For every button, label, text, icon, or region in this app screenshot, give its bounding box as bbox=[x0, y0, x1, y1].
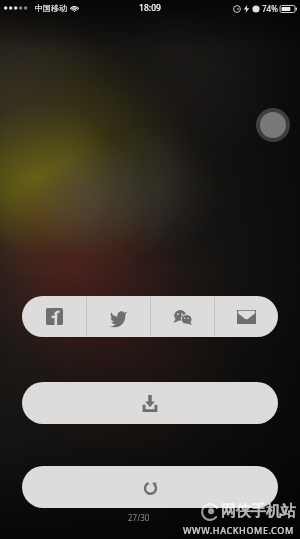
button[interactable]: Download bbox=[22, 382, 278, 424]
button[interactable]: Share on Facebook bbox=[22, 296, 86, 337]
button[interactable]: More options bbox=[256, 108, 290, 142]
staticText: 中国移动 bbox=[35, 3, 67, 13]
staticText: 27/30 bbox=[128, 512, 150, 523]
button[interactable]: Share on Twitter bbox=[87, 296, 150, 337]
button[interactable]: Refresh bbox=[22, 466, 278, 508]
button[interactable]: Share by Email bbox=[215, 296, 278, 337]
staticText: 18:09 bbox=[139, 2, 161, 14]
staticText: WWW.HACKHOME.COM bbox=[183, 524, 294, 536]
staticText: 网侠手机站 bbox=[221, 502, 296, 521]
button[interactable]: Share on WeChat bbox=[151, 296, 214, 337]
staticText: 74% bbox=[262, 3, 278, 14]
